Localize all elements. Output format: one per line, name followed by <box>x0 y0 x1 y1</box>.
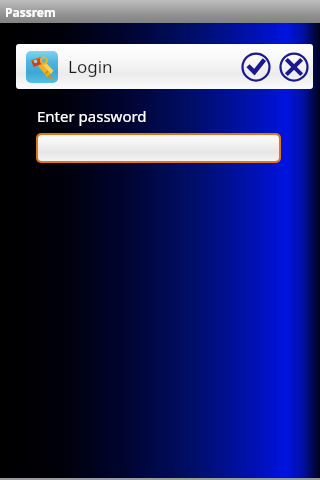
button[interactable]: Login icon <box>26 51 58 83</box>
button[interactable] <box>38 135 279 161</box>
staticText: Login <box>68 55 113 78</box>
staticText: Enter password <box>37 106 147 126</box>
staticText: Passrem <box>5 4 56 20</box>
button[interactable]: Accept <box>239 50 273 84</box>
button[interactable]: Cancel <box>277 50 311 84</box>
